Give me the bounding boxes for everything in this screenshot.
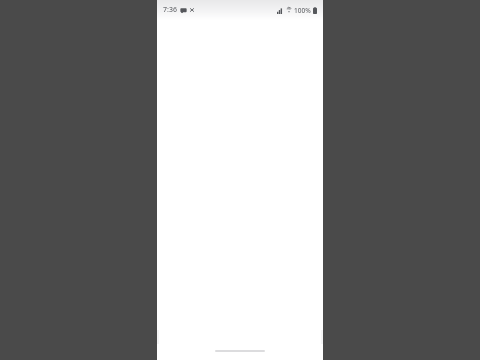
staticText: 7:36 [163, 5, 177, 15]
staticText: 100% [294, 6, 311, 15]
button[interactable]: Home gesture bar [157, 344, 323, 360]
